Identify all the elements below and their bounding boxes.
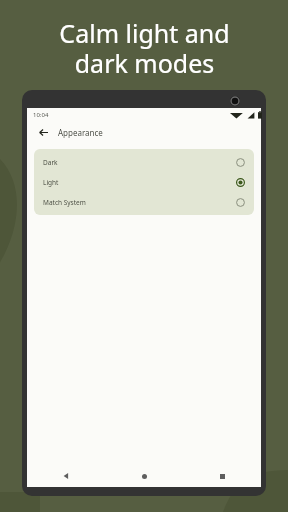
button[interactable]: Match System [34,192,254,212]
staticText: Dark [43,158,58,167]
button[interactable]: Recent apps [183,465,261,487]
staticText: 10:04 [33,111,49,119]
button[interactable]: Home [105,465,183,487]
staticText: Calm light and dark modes [59,16,230,80]
staticText: Appearance [58,127,103,138]
button[interactable]: Back [27,465,105,487]
staticText: Light [43,178,59,187]
button[interactable]: Back [35,124,51,140]
staticText: Match System [43,198,86,207]
button[interactable]: Light [34,172,254,192]
button[interactable]: Dark [34,152,254,172]
